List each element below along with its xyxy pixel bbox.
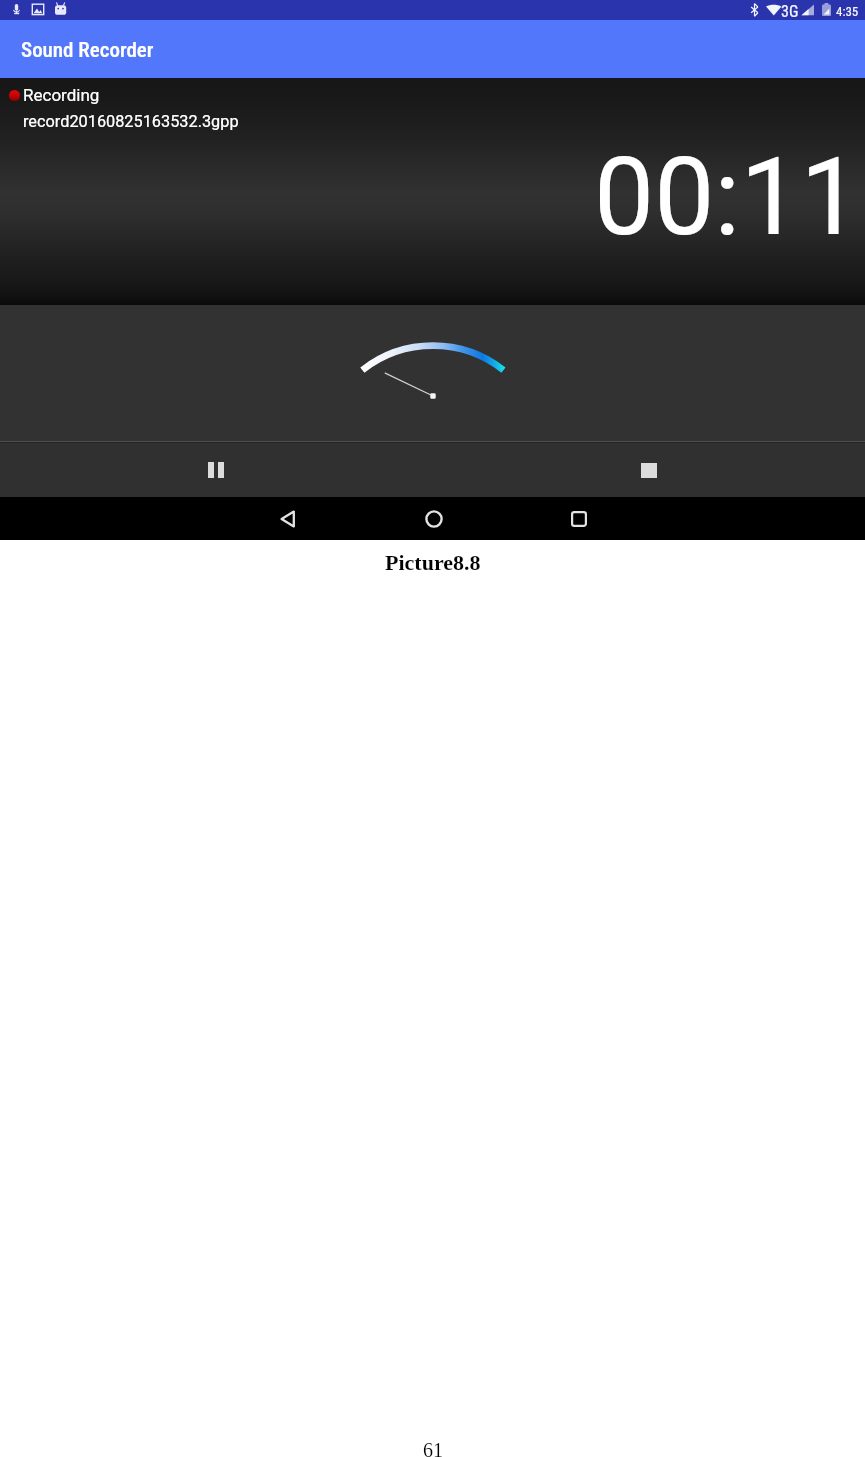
- staticText: 3G: [781, 2, 799, 21]
- staticText: record20160825163532.3gpp: [23, 112, 239, 131]
- button[interactable]: Back: [263, 497, 312, 540]
- button[interactable]: Sound Recorder: [0, 20, 865, 78]
- button[interactable]: Pause: [0, 443, 432, 497]
- staticText: Sound Recorder: [21, 38, 154, 63]
- staticText: 61: [423, 1439, 443, 1457]
- staticText: Recording: [23, 85, 100, 105]
- staticText: 00:11: [594, 135, 861, 260]
- button[interactable]: Home: [409, 497, 458, 540]
- staticText: Picture8.8: [385, 550, 481, 574]
- staticText: 4:35: [836, 4, 859, 19]
- button[interactable]: Stop: [432, 443, 865, 497]
- button[interactable]: Recents: [554, 497, 603, 540]
